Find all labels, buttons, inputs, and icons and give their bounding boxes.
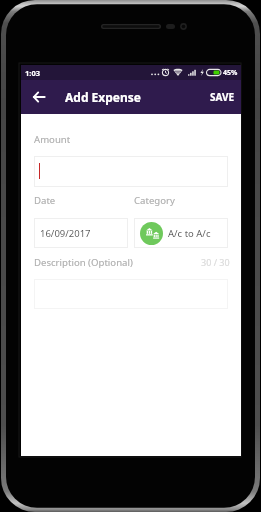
staticText: Description (Optional) (34, 256, 133, 269)
staticText: Date (34, 194, 56, 207)
staticText: Amount (34, 133, 71, 146)
staticText: 45% (223, 68, 238, 78)
staticText: 16/09/2017 (40, 227, 91, 240)
staticText: SAVE (210, 90, 235, 104)
button[interactable]: Back (27, 85, 51, 109)
staticText: A/c to A/c (168, 227, 211, 240)
staticText: Category (134, 194, 175, 207)
button[interactable] (34, 156, 228, 187)
button[interactable]: SAVE (204, 84, 241, 110)
staticText: 30 / 30 (201, 256, 230, 268)
button[interactable]: A/c to A/c (134, 218, 228, 248)
staticText: 1:03 (25, 68, 40, 78)
button[interactable]: 16/09/2017 (34, 218, 128, 248)
staticText: Add Expense (65, 89, 141, 105)
